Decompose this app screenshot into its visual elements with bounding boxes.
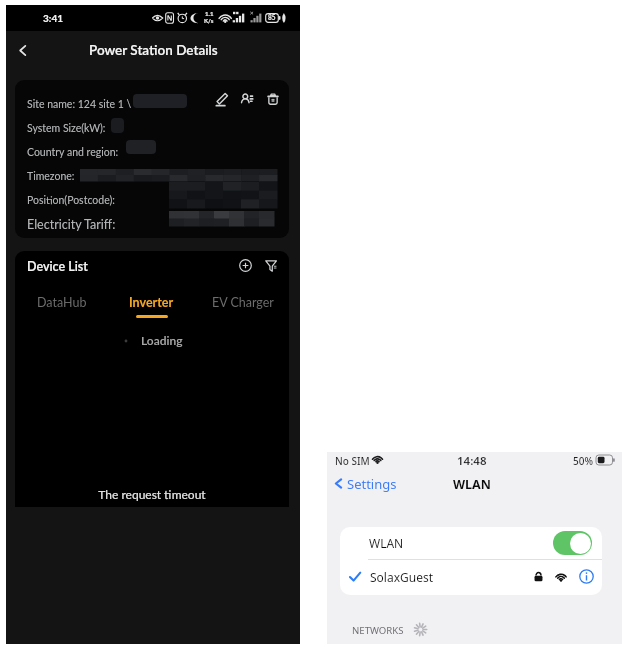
button[interactable]: Add device (235, 255, 255, 275)
staticText: SolaxGuest (370, 569, 434, 585)
button[interactable]: Network info (578, 568, 595, 585)
staticText: 50% (573, 454, 593, 468)
button[interactable]: SolaxGuest (340, 559, 602, 595)
staticText: Timezone: (27, 170, 75, 183)
staticText: Settings (347, 475, 397, 493)
staticText: Electricity Tariff: (27, 217, 116, 232)
button[interactable]: Inverter (105, 295, 197, 327)
button[interactable]: Back (9, 37, 35, 63)
button[interactable]: Edit (211, 89, 231, 109)
button[interactable]: WLAN (340, 527, 602, 559)
staticText: K/s (204, 17, 214, 24)
staticText: Site name: 124 site 1 \ (27, 98, 132, 111)
staticText: 14:48 (457, 453, 487, 469)
staticText: Device List (27, 259, 88, 274)
button[interactable]: Delete (263, 89, 283, 109)
staticText: WLAN (369, 535, 404, 551)
staticText: No SIM (335, 454, 370, 468)
staticText: Inverter (129, 295, 174, 310)
button[interactable]: DataHub (16, 295, 107, 327)
staticText: Power Station Details (89, 42, 218, 58)
button[interactable]: EV Charger (197, 295, 289, 327)
button[interactable]: Filter (261, 255, 281, 275)
staticText: Position(Postcode): (27, 194, 115, 207)
staticText: Country and region: (27, 146, 119, 159)
staticText: 3:41 (43, 12, 63, 24)
staticText: DataHub (37, 295, 87, 310)
staticText: The request timeout (15, 487, 289, 501)
button[interactable]: WLAN on (553, 531, 592, 555)
staticText: System Size(kW): (27, 122, 106, 135)
staticText: 1.1 (205, 10, 214, 17)
staticText: 85 (268, 14, 276, 22)
staticText: NETWORKS (352, 624, 404, 637)
button[interactable]: Share (237, 89, 257, 109)
staticText: WLAN (453, 476, 491, 493)
button[interactable]: Settings (333, 474, 397, 493)
staticText: EV Charger (212, 295, 274, 310)
staticText: Loading (141, 333, 183, 347)
